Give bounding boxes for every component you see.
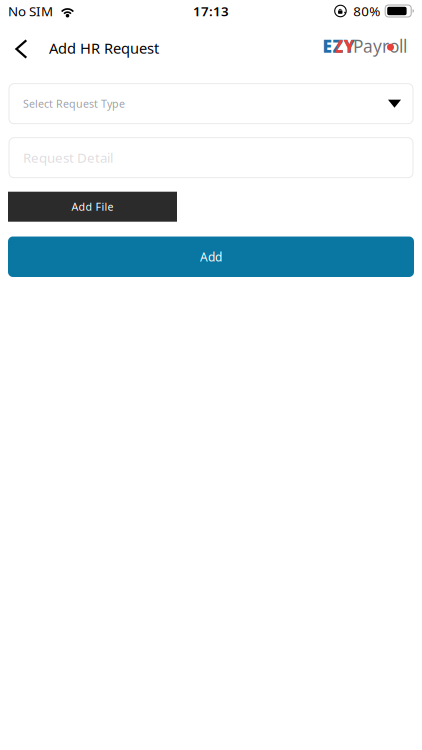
staticText: No SIM (8, 2, 53, 20)
staticText: EZY (322, 34, 355, 57)
staticText: 80% (353, 2, 380, 20)
button[interactable]: Add File (8, 192, 177, 222)
button[interactable]: Back (9, 34, 49, 64)
staticText: Select Request Type (23, 97, 125, 111)
staticText: Add (200, 249, 222, 265)
button[interactable]: Select Request Type (9, 84, 413, 124)
staticText: EZY (322, 34, 355, 57)
staticText: Add HR Request (49, 38, 159, 58)
button[interactable]: Add (8, 236, 414, 277)
staticText: Payroll (353, 34, 407, 57)
staticText: Add File (71, 200, 113, 214)
staticText: Request Detail (23, 149, 113, 166)
staticText: 17:13 (193, 2, 229, 20)
